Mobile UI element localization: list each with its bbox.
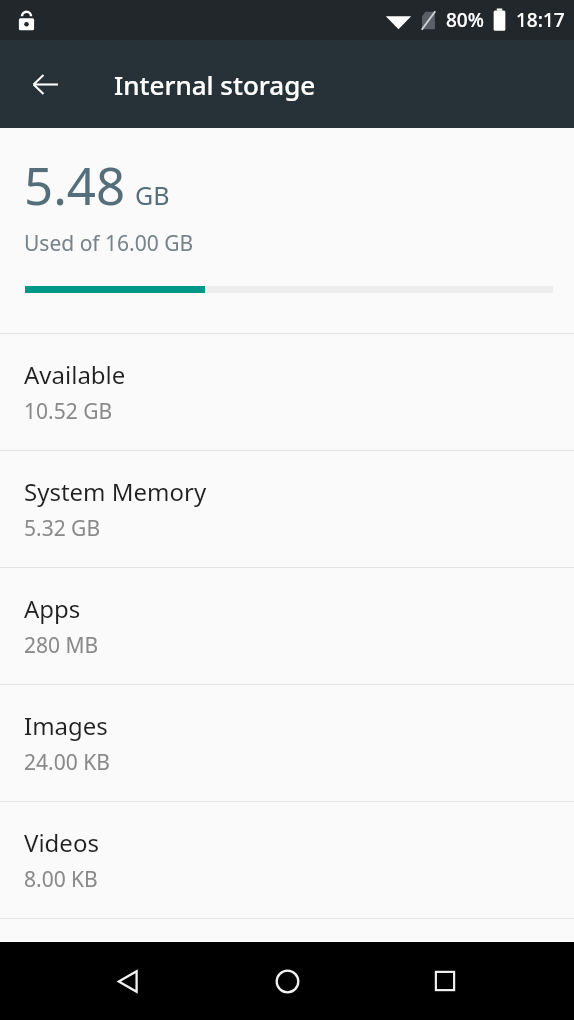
staticText: Available	[24, 358, 126, 391]
button[interactable]: Videos	[0, 802, 574, 918]
staticText: 5.48	[24, 150, 126, 219]
button[interactable]: Available	[0, 334, 574, 450]
staticText: 280 MB	[24, 631, 99, 660]
staticText: 8.00 KB	[24, 865, 98, 894]
button[interactable]: Recent apps	[415, 951, 475, 1011]
staticText: 5.32 GB	[24, 514, 101, 543]
button[interactable]: Back	[98, 951, 158, 1011]
staticText: System Memory	[24, 475, 207, 508]
staticText: Used of 16.00 GB	[24, 229, 194, 258]
staticText: 80%	[446, 7, 484, 33]
staticText: 10.52 GB	[24, 397, 113, 426]
button[interactable]: Apps	[0, 568, 574, 684]
staticText: Videos	[24, 826, 99, 859]
button[interactable]: Images	[0, 685, 574, 801]
staticText: 18:17	[516, 7, 565, 33]
button[interactable]: Home	[257, 951, 317, 1011]
button[interactable]: System Memory	[0, 451, 574, 567]
staticText: 24.00 KB	[24, 748, 110, 777]
staticText: Internal storage	[114, 67, 316, 102]
staticText: Apps	[24, 592, 81, 625]
staticText: Images	[24, 709, 108, 742]
button[interactable]: Back	[17, 56, 73, 112]
staticText: GB	[135, 178, 170, 212]
